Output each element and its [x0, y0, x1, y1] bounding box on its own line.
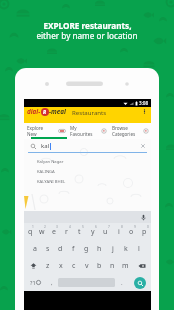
button[interactable]: Backspace — [132, 257, 151, 274]
button[interactable]: q — [24, 223, 36, 240]
button[interactable]: p — [138, 223, 151, 240]
button[interactable]: e — [48, 223, 60, 240]
staticText: 4 — [69, 225, 71, 229]
staticText: i — [118, 227, 120, 237]
staticText: Kalyan Nagar — [37, 159, 64, 165]
other: Voice input — [140, 214, 147, 221]
button[interactable]: w — [36, 223, 48, 240]
button[interactable]: Clear search — [140, 143, 146, 149]
staticText: h — [97, 244, 102, 254]
staticText: f — [72, 244, 75, 254]
button[interactable]: KALYANI BHEL — [24, 177, 151, 187]
button[interactable]: r — [60, 223, 73, 240]
button[interactable]: t — [73, 223, 86, 240]
button[interactable]: More options — [140, 107, 149, 116]
button[interactable]: , — [46, 274, 58, 291]
button[interactable]: Explore — [24, 123, 67, 139]
button[interactable]: n — [106, 257, 119, 274]
button[interactable]: Shift — [24, 257, 42, 274]
staticText: z — [46, 261, 50, 271]
staticText: KALYANI BHEL — [37, 179, 66, 185]
staticText: -meal — [49, 107, 66, 116]
button[interactable]: . — [115, 274, 128, 291]
staticText: 8 — [121, 225, 123, 229]
button[interactable]: o — [125, 223, 138, 240]
staticText: s — [46, 244, 50, 254]
staticText: . — [121, 279, 123, 287]
staticText: m — [122, 261, 129, 271]
button[interactable]: l — [132, 240, 145, 257]
staticText: R — [43, 109, 47, 116]
staticText: w — [39, 227, 45, 237]
button[interactable]: c — [67, 257, 80, 274]
staticText: b — [97, 261, 102, 271]
button[interactable]: h — [93, 240, 106, 257]
staticText: 7 — [108, 225, 110, 229]
button[interactable]: j — [106, 240, 119, 257]
staticText: EXPLORE restaurants, — [43, 20, 132, 31]
staticText: 3:08 — [139, 100, 149, 106]
button[interactable]: k — [119, 240, 132, 257]
button[interactable]: KALINGA — [24, 167, 151, 177]
staticText: g — [84, 244, 89, 254]
button[interactable]: b — [93, 257, 106, 274]
staticText: c — [72, 261, 76, 271]
button[interactable]: Kalyan Nagar — [24, 157, 151, 167]
button[interactable]: f — [67, 240, 80, 257]
button[interactable]: Symbols — [24, 274, 46, 291]
button[interactable]: z — [42, 257, 54, 274]
button[interactable]: y — [86, 223, 99, 240]
staticText: a — [33, 244, 37, 254]
staticText: d — [58, 244, 63, 254]
button[interactable]: g — [80, 240, 93, 257]
button[interactable]: v — [80, 257, 93, 274]
button[interactable]: m — [119, 257, 132, 274]
staticText: r — [65, 227, 68, 237]
staticText: y — [91, 227, 95, 237]
staticText: 6 — [95, 225, 97, 229]
staticText: either by name or location — [36, 30, 138, 41]
staticText: dial- — [27, 107, 41, 116]
staticText: q — [28, 227, 33, 237]
staticText: p — [142, 227, 147, 237]
staticText: Browse — [112, 125, 128, 131]
staticText: kal — [41, 142, 50, 150]
button[interactable]: i — [112, 223, 125, 240]
staticText: New — [27, 131, 37, 137]
staticText: , — [51, 279, 53, 287]
staticText: 9 — [134, 225, 136, 229]
button[interactable]: d — [54, 240, 67, 257]
button[interactable]: s — [41, 240, 54, 257]
staticText: 3 — [56, 225, 58, 229]
staticText: Explore — [27, 125, 44, 131]
staticText: ?1 — [30, 279, 36, 286]
button[interactable]: My — [67, 123, 109, 139]
staticText: My — [70, 125, 77, 131]
staticText: k — [124, 244, 128, 254]
staticText: e — [52, 227, 56, 237]
button[interactable]: u — [99, 223, 112, 240]
button[interactable]: Browse — [109, 123, 151, 139]
staticText: 5 — [82, 225, 84, 229]
staticText: u — [103, 227, 108, 237]
staticText: 2 — [44, 225, 46, 229]
staticText: Categories — [112, 131, 136, 137]
staticText: o — [129, 227, 134, 237]
button[interactable]: a — [29, 240, 41, 257]
staticText: 0 — [147, 225, 149, 229]
staticText: j — [112, 244, 114, 254]
button[interactable]: x — [54, 257, 67, 274]
staticText: Restaurants — [72, 108, 107, 116]
staticText: 1 — [32, 225, 34, 229]
staticText: x — [59, 261, 63, 271]
staticText: v — [85, 261, 89, 271]
staticText: n — [110, 261, 115, 271]
staticText: KALINGA — [37, 169, 55, 175]
staticText: Favourites — [70, 131, 93, 137]
button[interactable]: Search — [128, 274, 151, 291]
staticText: t — [78, 227, 81, 237]
staticText: l — [138, 244, 140, 254]
